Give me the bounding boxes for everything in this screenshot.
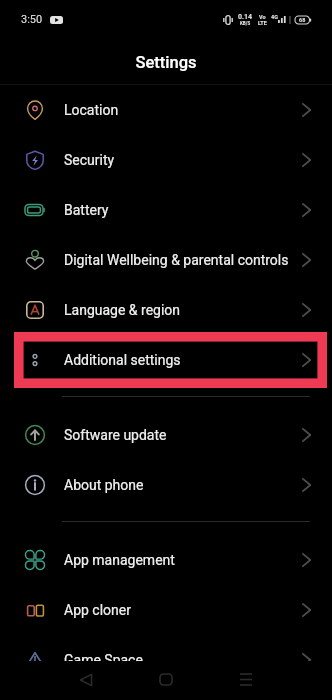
- staticText: Game Space: [64, 652, 143, 668]
- staticText: 3:50: [21, 13, 43, 26]
- staticText: Language & region: [64, 302, 181, 318]
- button[interactable]: Software update: [0, 410, 332, 460]
- staticText: Vo: [259, 14, 266, 20]
- staticText: About phone: [64, 477, 144, 493]
- staticText: 4G: [271, 14, 278, 20]
- button[interactable]: Digital Wellbeing & parental controls: [0, 235, 332, 285]
- button[interactable]: About phone: [0, 460, 332, 510]
- button[interactable]: Additional settings: [0, 335, 332, 385]
- staticText: LTE: [258, 20, 267, 26]
- button[interactable]: Game Space: [0, 635, 332, 685]
- staticText: Location: [64, 102, 119, 118]
- staticText: Security: [64, 152, 115, 168]
- staticText: Software update: [64, 427, 167, 443]
- staticText: Additional settings: [64, 352, 181, 368]
- button[interactable]: Battery: [0, 185, 332, 235]
- staticText: App management: [64, 552, 175, 568]
- staticText: 0.14: [238, 13, 253, 21]
- button[interactable]: Home: [126, 661, 206, 700]
- button[interactable]: Back: [46, 661, 126, 700]
- button[interactable]: Language & region: [0, 285, 332, 335]
- button[interactable]: App management: [0, 535, 332, 585]
- staticText: Battery: [64, 202, 109, 218]
- button[interactable]: App cloner: [0, 585, 332, 635]
- staticText: KB/S: [240, 21, 251, 26]
- button[interactable]: Recent apps: [206, 661, 286, 700]
- staticText: Digital Wellbeing & parental controls: [64, 252, 289, 268]
- button[interactable]: Location: [0, 85, 332, 135]
- staticText: 68: [299, 17, 306, 23]
- staticText: App cloner: [64, 602, 131, 618]
- button[interactable]: Security: [0, 135, 332, 185]
- staticText: Settings: [135, 53, 197, 72]
